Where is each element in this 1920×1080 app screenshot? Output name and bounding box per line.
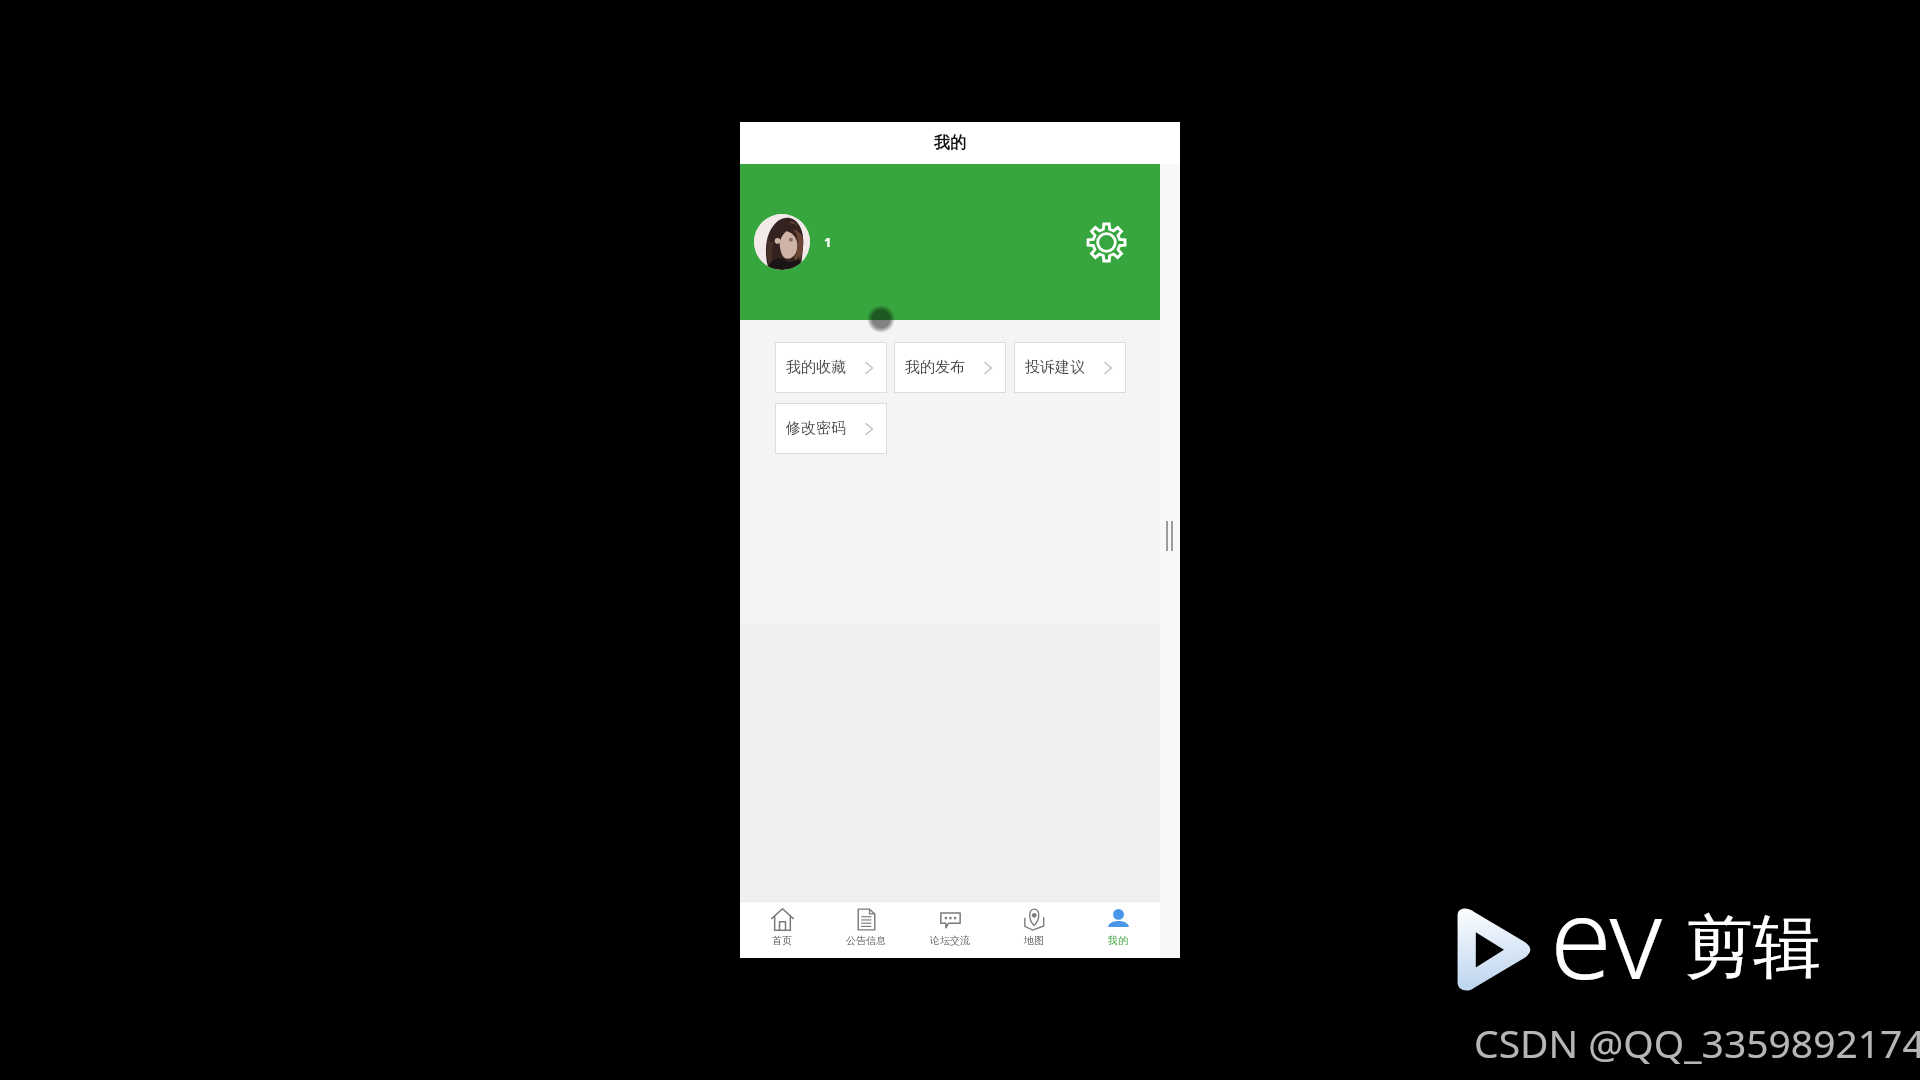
- staticText: 首页: [772, 934, 792, 947]
- staticText: 1: [824, 233, 832, 251]
- staticText: CSDN @QQ_3359892174: [1474, 1016, 1920, 1069]
- button[interactable]: 论坛交流: [908, 902, 992, 958]
- staticText: 论坛交流: [930, 934, 970, 947]
- staticText: 剪辑: [1685, 905, 1821, 991]
- staticText: 修改密码: [786, 419, 846, 438]
- button[interactable]: 修改密码: [775, 403, 887, 454]
- staticText: 我的发布: [905, 358, 965, 377]
- button[interactable]: 我的: [1076, 902, 1160, 958]
- button[interactable]: Drag handle: [1166, 521, 1173, 551]
- staticText: 我的收藏: [786, 358, 846, 377]
- button[interactable]: 我的收藏: [775, 342, 887, 393]
- button[interactable]: 首页: [740, 902, 824, 958]
- staticText: 投诉建议: [1025, 358, 1085, 377]
- button[interactable]: Profile photo: [754, 214, 810, 270]
- button[interactable]: Settings: [1084, 220, 1128, 264]
- button[interactable]: 公告信息: [824, 902, 908, 958]
- button[interactable]: 我的发布: [894, 342, 1006, 393]
- staticText: ev: [1550, 859, 1663, 1012]
- staticText: 我的: [934, 133, 966, 153]
- button[interactable]: 投诉建议: [1014, 342, 1126, 393]
- button[interactable]: 地图: [992, 902, 1076, 958]
- staticText: 公告信息: [846, 934, 886, 947]
- staticText: 地图: [1024, 934, 1044, 947]
- staticText: 我的: [1108, 934, 1128, 947]
